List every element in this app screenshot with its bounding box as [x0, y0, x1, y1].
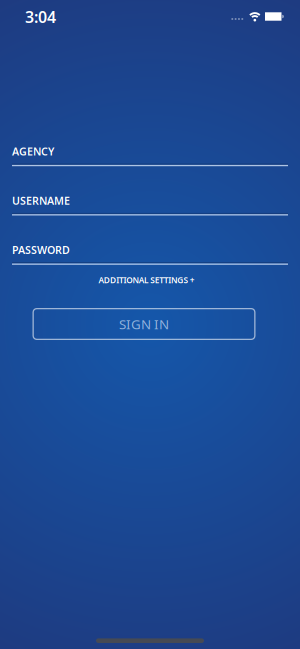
button[interactable]: AGENCY: [12, 144, 288, 166]
staticText: ADDITIONAL SETTINGS +: [93, 273, 200, 286]
button[interactable]: SIGN IN: [32, 308, 255, 340]
button[interactable]: PASSWORD: [12, 243, 288, 265]
button[interactable]: ADDITIONAL SETTINGS +: [66, 274, 226, 286]
staticText: PASSWORD: [12, 243, 70, 257]
staticText: SIGN IN: [119, 315, 169, 333]
staticText: 3:04: [25, 6, 56, 27]
staticText: AGENCY: [12, 144, 54, 158]
staticText: USERNAME: [12, 193, 70, 208]
button[interactable]: USERNAME: [12, 193, 288, 215]
